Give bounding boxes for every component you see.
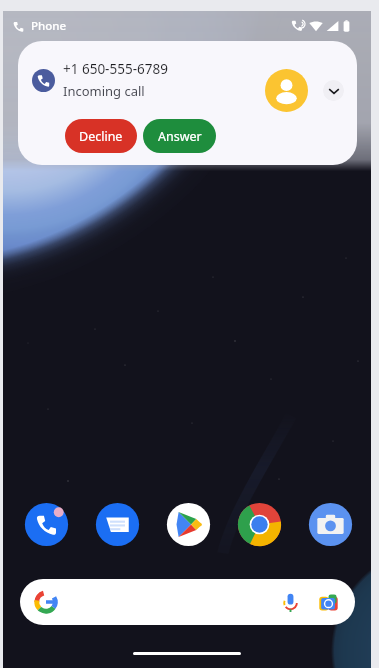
button[interactable]: Messages bbox=[94, 501, 141, 548]
button[interactable]: Decline bbox=[65, 119, 137, 153]
staticText: Decline bbox=[79, 128, 123, 145]
staticText: +1 650-555-6789 bbox=[63, 60, 168, 78]
button[interactable]: Play Store bbox=[165, 501, 212, 548]
button[interactable]: Phone call in progress bbox=[13, 16, 67, 36]
staticText: Answer bbox=[158, 128, 202, 145]
button[interactable]: +1 650-555-6789 bbox=[18, 48, 264, 112]
button[interactable]: Chrome bbox=[236, 501, 283, 548]
button[interactable]: Camera bbox=[307, 501, 354, 548]
button[interactable]: Expand notification bbox=[323, 80, 344, 101]
button[interactable]: Phone bbox=[23, 501, 70, 548]
button[interactable]: Google Lens bbox=[314, 588, 342, 616]
button[interactable]: Answer bbox=[143, 119, 216, 153]
staticText: Incoming call bbox=[63, 82, 145, 100]
staticText: Phone bbox=[31, 18, 67, 34]
button[interactable]: Voice search bbox=[276, 588, 304, 616]
button[interactable]: Voice search bbox=[20, 579, 355, 625]
